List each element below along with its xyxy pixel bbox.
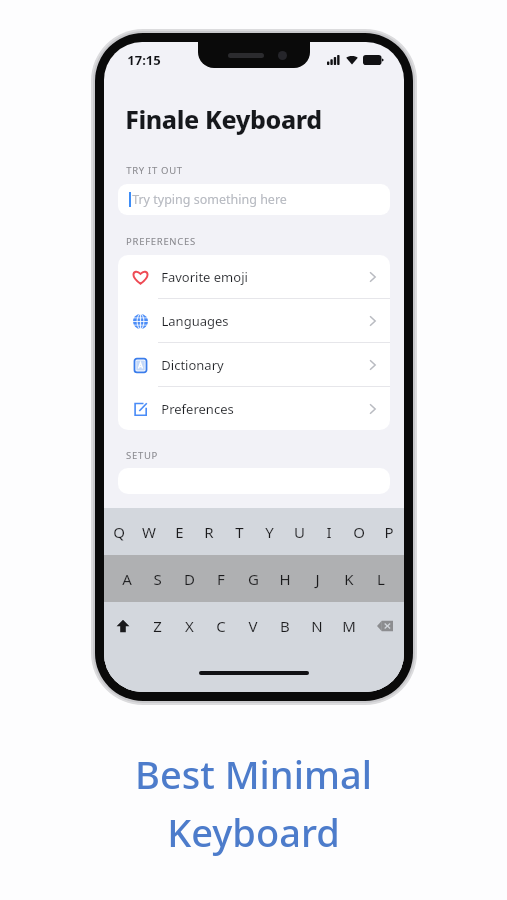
button[interactable]: Preferences xyxy=(118,387,390,430)
button[interactable]: R xyxy=(194,508,224,555)
staticText: Preferences xyxy=(161,400,234,418)
staticText: PREFERENCES xyxy=(126,235,196,248)
button[interactable]: G xyxy=(237,555,269,602)
button[interactable]: C xyxy=(205,602,237,649)
button[interactable]: D xyxy=(173,555,205,602)
staticText: P xyxy=(384,522,394,542)
staticText: X xyxy=(185,616,194,636)
button[interactable]: N xyxy=(301,602,333,649)
staticText: H xyxy=(279,569,291,589)
staticText: R xyxy=(204,522,214,542)
button[interactable]: U xyxy=(284,508,314,555)
staticText: Finale Keyboard xyxy=(125,102,322,136)
staticText: Q xyxy=(113,522,125,542)
staticText: W xyxy=(142,522,156,542)
button[interactable]: A xyxy=(111,555,142,602)
staticText: Keyboard xyxy=(167,806,340,858)
staticText: 17:15 xyxy=(127,51,161,69)
staticText: N xyxy=(311,616,323,636)
button[interactable]: V xyxy=(237,602,269,649)
staticText: E xyxy=(175,522,184,542)
button[interactable]: S xyxy=(142,555,173,602)
staticText: TRY IT OUT xyxy=(126,164,183,177)
staticText: Languages xyxy=(161,312,229,330)
staticText: U xyxy=(294,522,305,542)
staticText: S xyxy=(153,569,162,589)
button[interactable]: Dictionary xyxy=(118,343,390,386)
button[interactable]: P xyxy=(374,508,404,555)
staticText: I xyxy=(326,522,332,542)
staticText: L xyxy=(377,569,385,589)
button[interactable]: T xyxy=(224,508,254,555)
staticText: T xyxy=(235,522,244,542)
button[interactable]: O xyxy=(344,508,374,555)
staticText: D xyxy=(184,569,195,589)
staticText: Dictionary xyxy=(161,356,224,374)
staticText: F xyxy=(217,569,225,589)
staticText: K xyxy=(344,569,354,589)
staticText: Favorite emoji xyxy=(161,268,248,286)
button[interactable]: X xyxy=(173,602,205,649)
staticText: Y xyxy=(265,522,274,542)
button[interactable]: Languages xyxy=(118,299,390,342)
staticText: SETUP xyxy=(126,449,158,462)
button[interactable]: E xyxy=(164,508,194,555)
button[interactable]: Shift xyxy=(104,602,142,649)
button[interactable]: J xyxy=(301,555,333,602)
button[interactable]: Try typing something here xyxy=(118,184,390,215)
staticText: V xyxy=(248,616,258,636)
button[interactable]: M xyxy=(333,602,365,649)
button[interactable]: F xyxy=(205,555,237,602)
staticText: G xyxy=(248,569,259,589)
staticText: M xyxy=(342,616,356,636)
button[interactable]: Y xyxy=(254,508,284,555)
button[interactable]: Favorite emoji xyxy=(118,255,390,298)
staticText: C xyxy=(216,616,226,636)
staticText: O xyxy=(353,522,365,542)
button[interactable]: L xyxy=(365,555,397,602)
staticText: B xyxy=(280,616,290,636)
button[interactable]: Backspace xyxy=(365,602,404,649)
staticText: J xyxy=(315,569,320,589)
staticText: A xyxy=(122,569,132,589)
staticText: Best Minimal xyxy=(135,748,372,800)
button[interactable]: H xyxy=(269,555,301,602)
button[interactable]: Z xyxy=(142,602,173,649)
staticText: Z xyxy=(153,616,162,636)
button[interactable]: I xyxy=(314,508,344,555)
button[interactable]: B xyxy=(269,602,301,649)
button[interactable]: W xyxy=(134,508,164,555)
button[interactable]: K xyxy=(333,555,365,602)
button[interactable]: Q xyxy=(104,508,134,555)
staticText: Try typing something here xyxy=(132,191,287,208)
